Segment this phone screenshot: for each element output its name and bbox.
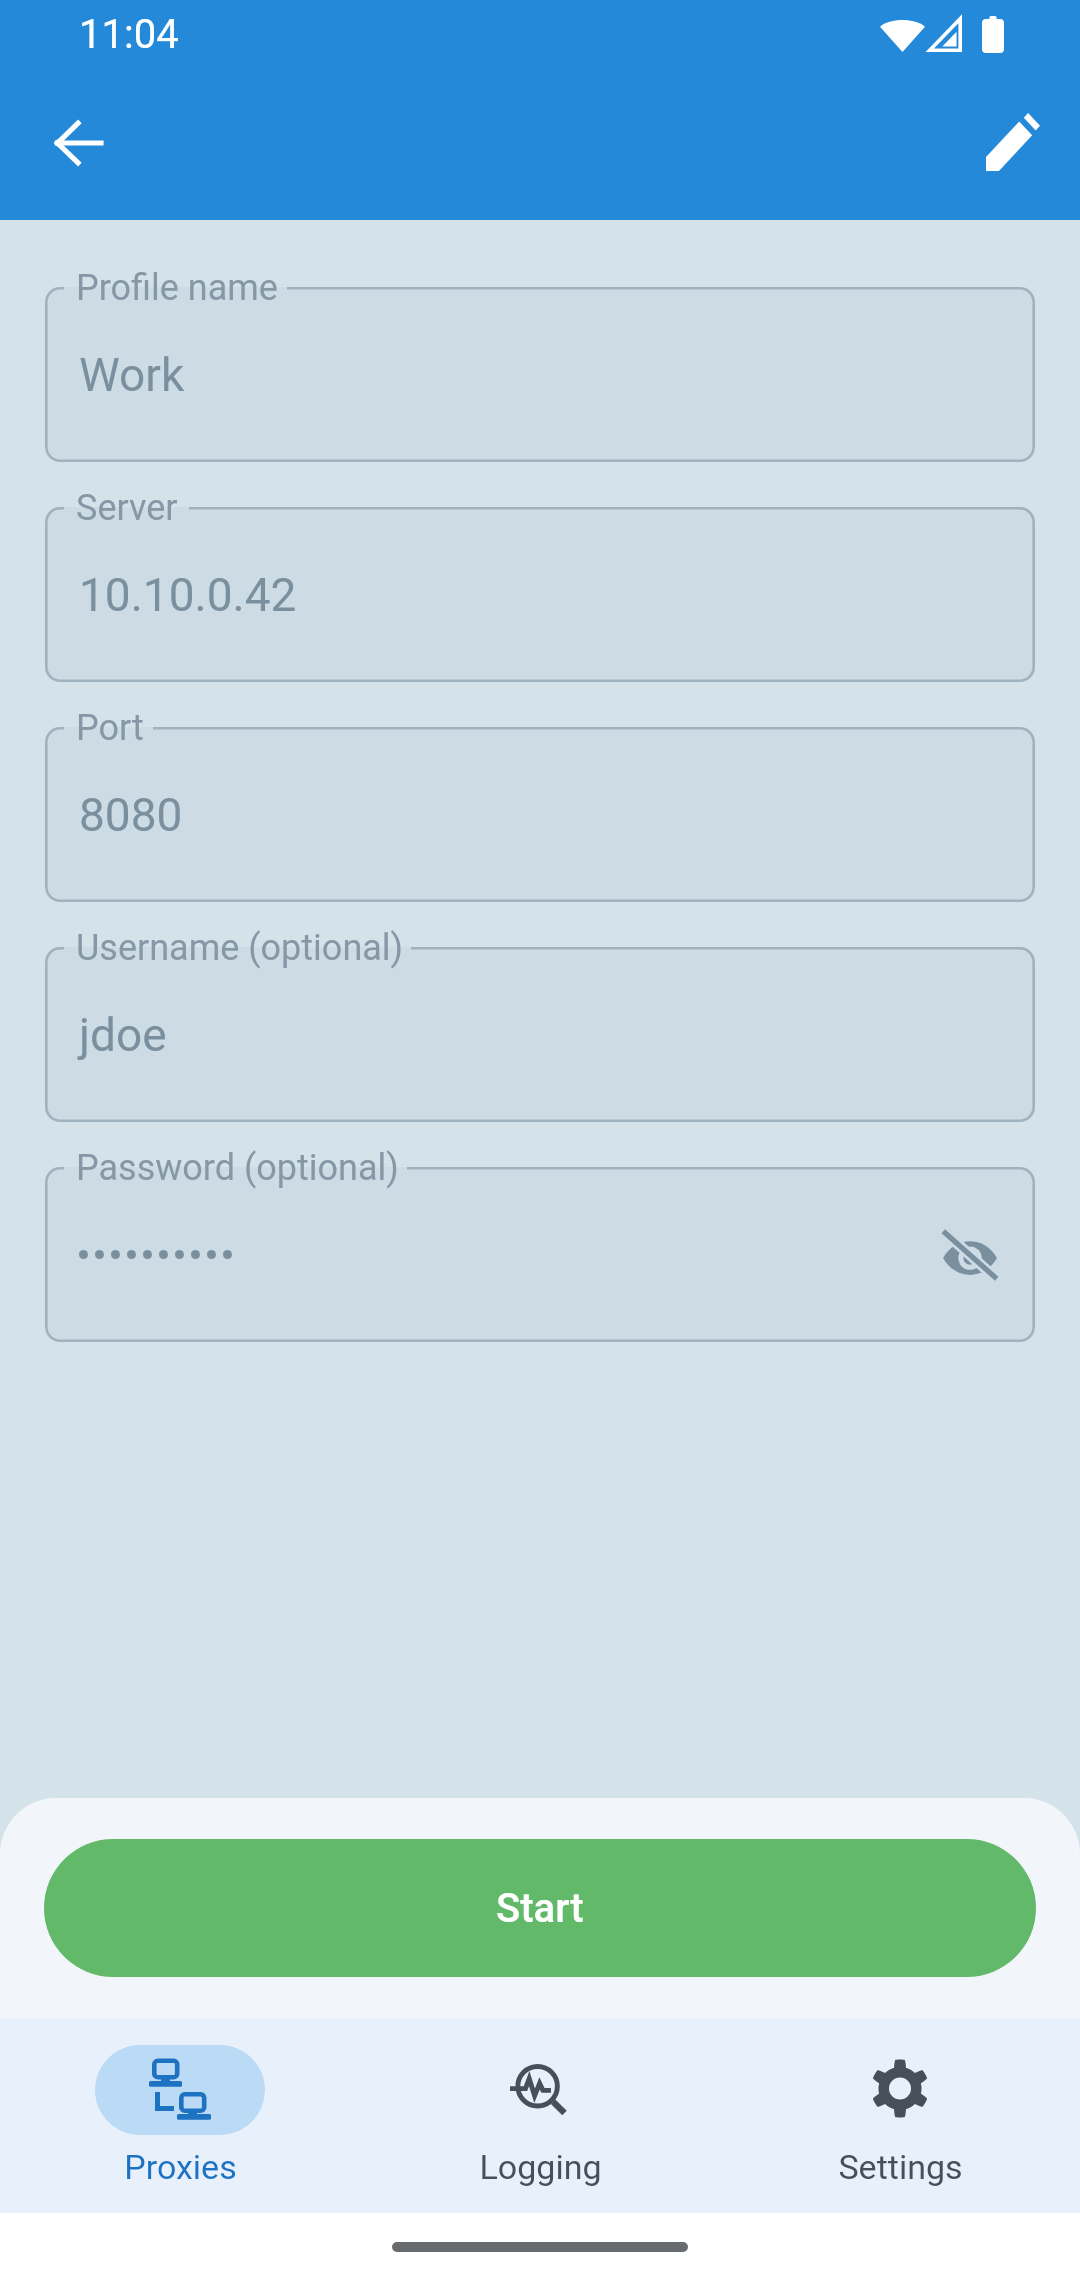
button[interactable]: Settings xyxy=(720,2018,1080,2213)
staticText: Start xyxy=(496,1885,584,1932)
button[interactable]: Edit xyxy=(965,94,1061,190)
staticText: Username (optional) xyxy=(76,927,404,969)
staticText: Profile name xyxy=(76,267,278,309)
button[interactable]: Logging xyxy=(360,2018,720,2213)
staticText: Settings xyxy=(838,2147,963,2187)
staticText: 10.10.0.42 xyxy=(79,568,297,622)
staticText: jdoe xyxy=(79,1008,167,1062)
staticText: Logging xyxy=(479,2147,602,2187)
button[interactable]: Profile name xyxy=(45,287,1035,462)
button[interactable]: Username (optional) xyxy=(45,947,1035,1122)
staticText: 8080 xyxy=(79,788,183,842)
button[interactable]: Start xyxy=(44,1839,1036,1977)
staticText: Proxies xyxy=(124,2147,237,2187)
staticText: Port xyxy=(76,707,144,749)
staticText: 11:04 xyxy=(79,11,179,58)
button[interactable]: Show password xyxy=(925,1210,1015,1300)
staticText: Password (optional) xyxy=(76,1147,399,1189)
button[interactable]: Port xyxy=(45,727,1035,902)
staticText: Work xyxy=(79,348,185,402)
button[interactable]: Back xyxy=(30,95,126,191)
staticText: Server xyxy=(76,487,178,529)
button[interactable]: Server xyxy=(45,507,1035,682)
button[interactable]: Proxies xyxy=(0,2018,360,2213)
button[interactable]: Password (optional) xyxy=(45,1167,1035,1342)
